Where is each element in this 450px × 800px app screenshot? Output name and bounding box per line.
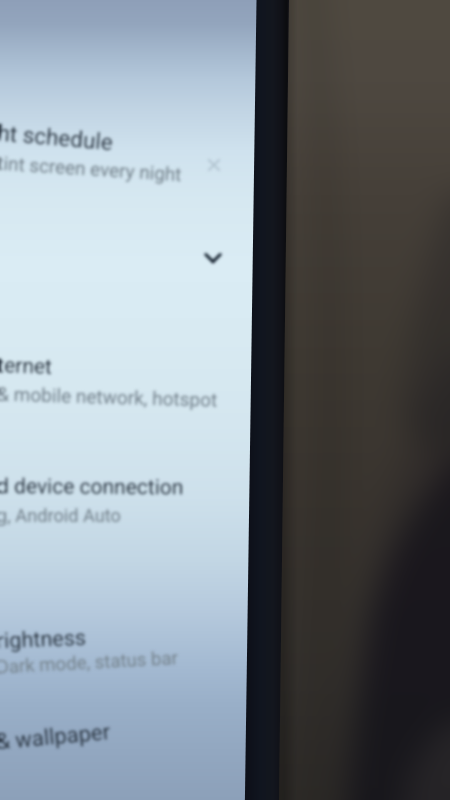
button[interactable]: Settings list <box>0 0 450 800</box>
